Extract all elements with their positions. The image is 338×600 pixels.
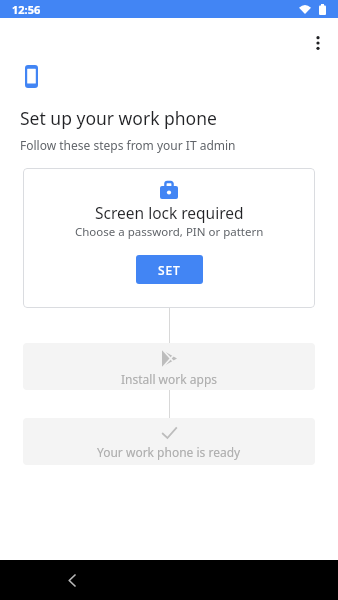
staticText: Set up your work phone <box>20 106 217 130</box>
staticText: Screen lock required <box>95 202 244 223</box>
button[interactable] <box>306 31 330 55</box>
staticText: SET <box>158 262 181 278</box>
button[interactable]: SET <box>136 255 203 284</box>
staticText: Follow these steps from your IT admin <box>20 137 236 153</box>
staticText: Install work apps <box>121 371 218 387</box>
button[interactable] <box>58 566 86 594</box>
staticText: Your work phone is ready <box>97 444 241 460</box>
staticText: Choose a password, PIN or pattern <box>75 224 264 240</box>
staticText: 12:56 <box>12 2 41 17</box>
